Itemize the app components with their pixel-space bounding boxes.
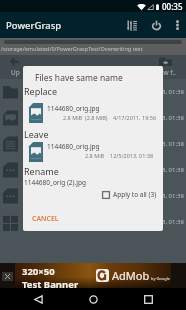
staticText: Up bbox=[11, 68, 20, 77]
staticText: 1144680_orig.jpg bbox=[47, 142, 100, 151]
button[interactable]: Power bbox=[144, 13, 168, 37]
staticText: New f.. bbox=[155, 68, 176, 77]
staticText: 320×50 bbox=[22, 265, 55, 278]
button[interactable]: 3, 01:38 bbox=[0, 79, 186, 105]
staticText: 3, 01:38 bbox=[162, 140, 184, 148]
staticText: Files have same name bbox=[35, 72, 123, 84]
button[interactable]: Back bbox=[21, 288, 55, 310]
button[interactable]: 3, 01:38 bbox=[0, 183, 186, 209]
staticText: by Google bbox=[151, 276, 170, 281]
staticText: 2.8 MiB (2.8 MiB) bbox=[63, 114, 108, 121]
staticText: 3, 01:38 bbox=[162, 88, 184, 96]
staticText: 00:35 bbox=[162, 1, 183, 12]
staticText: 2.8 MiB bbox=[85, 152, 105, 159]
button[interactable]: Close ad bbox=[2, 272, 13, 281]
staticText: 12/5/2013, 01:38 bbox=[110, 152, 154, 159]
staticText: /storage/emulated/0/PowerGraspTest/Overw… bbox=[1, 45, 143, 52]
staticText: 1144680_orig.jpg bbox=[47, 104, 100, 113]
button[interactable]: Replace bbox=[24, 85, 57, 97]
button[interactable]: Sort bbox=[120, 13, 144, 37]
button[interactable]: New f.. bbox=[144, 55, 186, 77]
button[interactable]: 3, 01:38 bbox=[0, 157, 186, 183]
staticText: 3, 01:38 bbox=[162, 218, 184, 226]
staticText: 3, 01:38 bbox=[162, 114, 184, 122]
staticText: Test Banner bbox=[22, 278, 79, 290]
button[interactable]: Leave bbox=[24, 128, 49, 140]
staticText: CANCEL bbox=[32, 214, 59, 224]
button[interactable]: More options bbox=[168, 16, 186, 34]
button[interactable]: Apply to all (3) bbox=[102, 190, 157, 199]
button[interactable]: Home bbox=[76, 288, 110, 310]
staticText: Apply to all (3) bbox=[113, 190, 157, 199]
button[interactable]: 3, 01:38 bbox=[0, 105, 186, 131]
staticText: 3, 01:38 bbox=[162, 192, 184, 200]
staticText: PowerGrasp bbox=[6, 19, 62, 32]
button[interactable]: Up bbox=[0, 55, 30, 77]
staticText: AdMob bbox=[112, 268, 150, 283]
button[interactable]: CANCEL bbox=[29, 212, 62, 226]
button[interactable]: Rename bbox=[24, 165, 59, 177]
button[interactable]: 3, 01:38 bbox=[0, 209, 186, 235]
staticText: 3, 01:38 bbox=[162, 166, 184, 174]
staticText: 1144680_orig (2).jpg bbox=[24, 178, 86, 187]
button[interactable]: Recents bbox=[131, 288, 165, 310]
staticText: 4/17/2011, 19:56 bbox=[113, 114, 157, 121]
button[interactable]: 3, 01:38 bbox=[0, 131, 186, 157]
